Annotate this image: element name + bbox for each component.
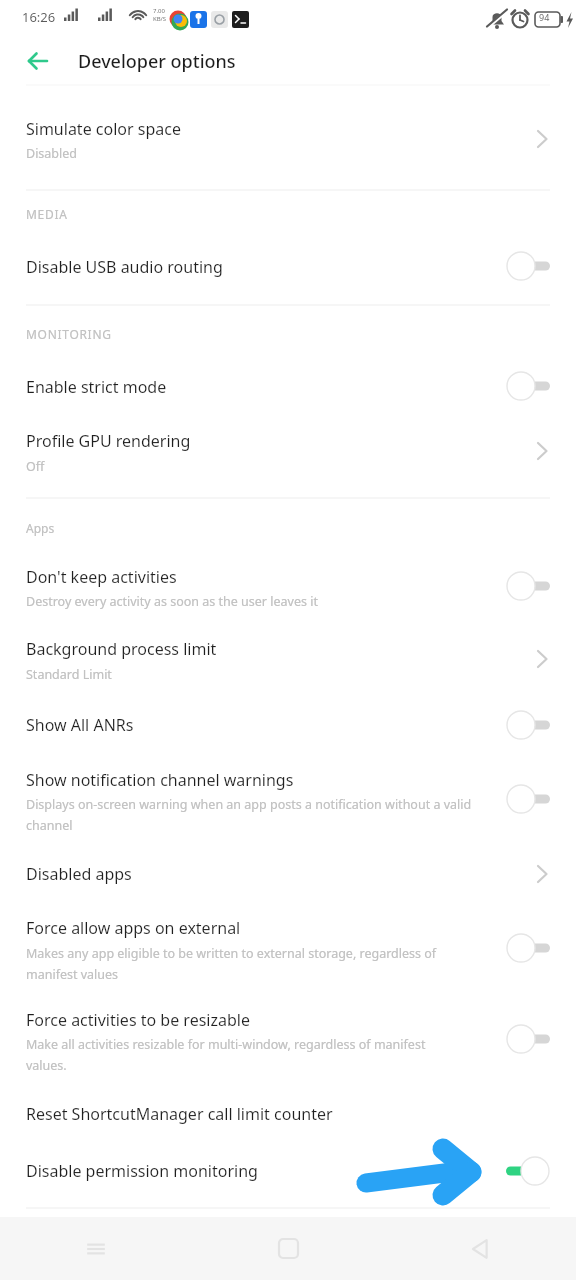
staticText: Background process limit [26,638,217,660]
button[interactable] [0,908,576,992]
staticText: MONITORING [26,326,112,342]
staticText: 94 [539,11,550,23]
button[interactable] [0,418,576,490]
button[interactable] [0,360,576,412]
button[interactable] [0,850,576,902]
staticText: Developer options [78,49,236,74]
staticText: 16:26 [22,8,56,26]
button[interactable] [0,998,576,1082]
staticText: Enable strict mode [26,376,167,398]
staticText: 7.00 [153,7,165,15]
staticText: Displays on-screen warning when an app p… [26,796,472,833]
button[interactable] [0,628,576,698]
staticText: Simulate color space [26,118,181,140]
staticText: Don't keep activities [26,566,177,588]
staticText: Reset ShortcutManager call limit counter [26,1103,333,1125]
button[interactable] [0,1146,576,1200]
staticText: Disabled [26,145,78,162]
button[interactable] [0,760,576,846]
staticText: Disable USB audio routing [26,256,223,278]
button[interactable] [0,552,576,622]
staticText: Show All ANRs [26,714,134,736]
button[interactable] [0,240,576,296]
staticText: KB/S [153,15,167,23]
button[interactable] [0,704,576,756]
staticText: Standard Limit [26,666,112,683]
staticText: Off [26,458,45,475]
staticText: Show notification channel warnings [26,769,294,791]
staticText: Disabled apps [26,863,132,885]
button[interactable] [0,100,576,180]
staticText: Profile GPU rendering [26,430,191,452]
staticText: Destroy every activity as soon as the us… [26,593,318,610]
staticText: Force activities to be resizable [26,1009,250,1031]
button[interactable] [0,1088,576,1142]
button[interactable]: Back [18,41,58,81]
staticText: Apps [26,520,55,536]
staticText: MEDIA [26,206,68,222]
staticText: Disable permission monitoring [26,1160,258,1182]
staticText: Force allow apps on external [26,917,241,939]
staticText: Make all activities resizable for multi-… [26,1036,426,1073]
staticText: Makes any app eligible to be written to … [26,945,437,982]
